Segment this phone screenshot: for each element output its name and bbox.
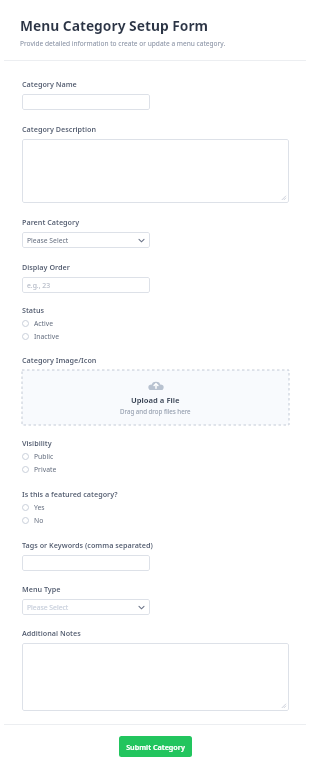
button[interactable]: Inactive xyxy=(22,330,60,343)
button[interactable]: Please Select xyxy=(22,232,150,248)
staticText: Provide detailed information to create o… xyxy=(20,39,226,48)
button[interactable]: e.g., 23 xyxy=(22,277,150,293)
staticText: Drag and drop files here xyxy=(120,407,191,415)
staticText: Upload a File xyxy=(131,395,180,405)
staticText: Active xyxy=(34,319,54,328)
staticText: Please Select xyxy=(27,603,69,612)
button[interactable]: Active xyxy=(22,317,54,330)
staticText: Public xyxy=(34,452,54,461)
staticText: Category Image/Icon xyxy=(22,355,97,365)
staticText: Submit Category xyxy=(126,742,185,752)
staticText: Status xyxy=(22,305,45,315)
button[interactable] xyxy=(22,94,150,110)
staticText: e.g., 23 xyxy=(27,281,51,290)
button[interactable]: Private xyxy=(22,463,57,476)
staticText: Private xyxy=(34,465,57,474)
staticText: No xyxy=(34,516,44,525)
button[interactable]: Please Select xyxy=(22,599,150,615)
staticText: Please Select xyxy=(27,236,69,245)
button[interactable]: Yes xyxy=(22,501,45,514)
staticText: Category Name xyxy=(22,79,77,89)
staticText: Display Order xyxy=(22,262,70,272)
staticText: Parent Category xyxy=(22,217,80,227)
button[interactable] xyxy=(22,555,150,571)
button[interactable]: Upload a File xyxy=(22,370,289,425)
button[interactable]: Submit Category xyxy=(119,736,192,757)
staticText: Visibility xyxy=(22,438,52,448)
staticText: Additional Notes xyxy=(22,628,81,638)
staticText: Tags or Keywords (comma separated) xyxy=(22,540,153,550)
button[interactable]: Public xyxy=(22,450,54,463)
staticText: Menu Type xyxy=(22,584,61,594)
staticText: Inactive xyxy=(34,332,60,341)
button[interactable] xyxy=(22,139,289,203)
button[interactable]: No xyxy=(22,514,44,527)
staticText: Menu Category Setup Form xyxy=(20,16,209,35)
staticText: Is this a featured category? xyxy=(22,489,118,499)
staticText: Category Description xyxy=(22,124,97,134)
staticText: Yes xyxy=(34,503,45,512)
button[interactable] xyxy=(22,643,289,711)
